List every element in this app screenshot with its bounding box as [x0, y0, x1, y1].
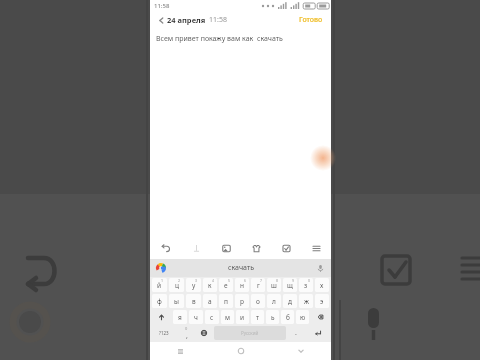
- button[interactable]: Undo: [150, 238, 181, 259]
- staticText: н: [240, 281, 244, 290]
- staticText: л: [272, 297, 276, 306]
- button[interactable]: 6: [235, 278, 249, 292]
- staticText: 0: [308, 278, 311, 283]
- staticText: Русский: [241, 330, 259, 336]
- staticText: п: [224, 297, 228, 306]
- button[interactable]: и: [236, 310, 249, 324]
- button[interactable]: 3: [186, 278, 201, 292]
- button[interactable]: Shift: [152, 310, 171, 324]
- button[interactable]: Stickers: [211, 238, 241, 259]
- button[interactable]: Voice input: [309, 259, 331, 277]
- staticText: щ: [287, 281, 293, 290]
- button[interactable]: 5: [219, 278, 233, 292]
- staticText: 5: [228, 278, 231, 283]
- button[interactable]: ч: [189, 310, 203, 324]
- button[interactable]: э: [315, 294, 329, 308]
- button[interactable]: Back: [155, 14, 167, 26]
- button[interactable]: р: [235, 294, 249, 308]
- staticText: 11:58: [209, 15, 227, 25]
- staticText: 7: [260, 278, 263, 283]
- staticText: скачать: [228, 263, 254, 273]
- button[interactable]: ф: [152, 294, 167, 308]
- staticText: ,: [186, 331, 188, 340]
- button[interactable]: а: [203, 294, 217, 308]
- button[interactable]: в: [186, 294, 201, 308]
- button[interactable]: Translate: [181, 238, 211, 259]
- staticText: 9: [292, 278, 295, 283]
- button[interactable]: о: [251, 294, 265, 308]
- button[interactable]: Recents: [150, 342, 211, 360]
- staticText: в: [192, 297, 196, 306]
- staticText: и: [240, 313, 245, 322]
- staticText: 11:58: [154, 2, 170, 10]
- button[interactable]: скачать: [172, 259, 309, 277]
- staticText: м: [225, 313, 230, 322]
- staticText: ь: [271, 313, 275, 322]
- staticText: з: [304, 281, 308, 290]
- staticText: 6: [244, 278, 247, 283]
- staticText: .: [295, 328, 297, 338]
- staticText: х: [320, 281, 324, 290]
- button[interactable]: ь: [266, 310, 279, 324]
- button[interactable]: ю: [296, 310, 309, 324]
- staticText: э: [320, 297, 324, 306]
- staticText: 8: [276, 278, 279, 283]
- staticText: 1: [161, 278, 164, 283]
- staticText: Всем привет покажу вам как скачать: [156, 34, 283, 44]
- button[interactable]: Symbols: [152, 326, 176, 340]
- button[interactable]: ы: [169, 294, 184, 308]
- staticText: й: [157, 281, 162, 290]
- staticText: 24 апреля: [167, 15, 206, 25]
- button[interactable]: Themes: [241, 238, 271, 259]
- button[interactable]: 9: [283, 278, 297, 292]
- button[interactable]: 1: [152, 278, 167, 292]
- button[interactable]: б: [281, 310, 294, 324]
- staticText: о: [256, 297, 260, 306]
- staticText: ю: [300, 313, 306, 322]
- button[interactable]: Language: [196, 326, 212, 340]
- button[interactable]: Русский: [214, 326, 286, 340]
- staticText: е: [224, 281, 228, 290]
- button[interactable]: л: [267, 294, 281, 308]
- button[interactable]: п: [219, 294, 233, 308]
- button[interactable]: Готово: [296, 14, 326, 26]
- button[interactable]: 4: [203, 278, 217, 292]
- staticText: ы: [174, 297, 179, 306]
- staticText: 2: [178, 278, 181, 283]
- staticText: у: [192, 281, 196, 290]
- staticText: ф: [157, 297, 162, 306]
- staticText: р: [240, 297, 244, 306]
- button[interactable]: ж: [299, 294, 313, 308]
- button[interactable]: 8: [267, 278, 281, 292]
- button[interactable]: Google: [150, 259, 172, 277]
- button[interactable]: м: [221, 310, 234, 324]
- button[interactable]: Backspace: [311, 310, 329, 324]
- button[interactable]: Comma: [178, 326, 194, 340]
- button[interactable]: Period: [288, 326, 304, 340]
- staticText: я: [178, 313, 182, 322]
- button[interactable]: 0: [299, 278, 313, 292]
- button[interactable]: 2: [169, 278, 184, 292]
- button[interactable]: Home: [211, 342, 271, 360]
- button[interactable]: More options: [301, 238, 331, 259]
- button[interactable]: с: [205, 310, 219, 324]
- staticText: 3: [195, 278, 198, 283]
- button[interactable]: Back: [271, 342, 331, 360]
- staticText: ?123: [159, 330, 169, 336]
- staticText: ч: [194, 313, 198, 322]
- button[interactable]: х: [315, 278, 329, 292]
- button[interactable]: д: [283, 294, 297, 308]
- button[interactable]: 7: [251, 278, 265, 292]
- staticText: г: [257, 281, 260, 290]
- button[interactable]: Clipboard: [271, 238, 301, 259]
- staticText: т: [256, 313, 260, 322]
- staticText: ц: [175, 281, 179, 290]
- button[interactable]: Enter: [306, 326, 329, 340]
- staticText: Готово: [299, 15, 323, 25]
- staticText: 4: [212, 278, 215, 283]
- staticText: с: [210, 313, 214, 322]
- button[interactable]: я: [173, 310, 187, 324]
- button[interactable]: т: [251, 310, 264, 324]
- staticText: ш: [271, 281, 277, 290]
- staticText: к: [208, 281, 212, 290]
